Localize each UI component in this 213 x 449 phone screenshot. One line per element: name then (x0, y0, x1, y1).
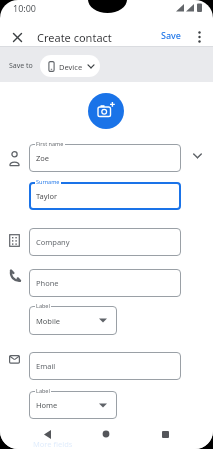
staticText: Mobile (36, 316, 61, 326)
staticText: Save (161, 29, 182, 41)
button[interactable] (38, 425, 56, 443)
staticText: Phone (36, 278, 59, 288)
staticText: 10:00 (13, 2, 37, 14)
staticText: Label (36, 387, 50, 394)
button[interactable] (88, 93, 124, 129)
staticText: Company (36, 237, 70, 247)
button[interactable] (188, 147, 206, 165)
staticText: Save to (9, 61, 33, 71)
button[interactable]: Email (29, 352, 181, 380)
staticText: Taylor (36, 191, 58, 201)
button[interactable] (8, 28, 26, 46)
button[interactable]: Mobile (29, 306, 117, 335)
button[interactable] (156, 425, 174, 443)
staticText: Create contact (37, 30, 112, 45)
button[interactable]: Phone (29, 269, 181, 297)
staticText: Device (59, 62, 83, 72)
staticText: Home (36, 400, 58, 410)
button[interactable]: Taylor (29, 182, 181, 210)
button[interactable] (192, 28, 206, 46)
button[interactable]: Zoe (29, 144, 181, 172)
staticText: More fields (33, 439, 73, 449)
staticText: Label (36, 302, 50, 309)
staticText: Email (36, 361, 56, 371)
button[interactable]: Company (29, 228, 181, 256)
button[interactable]: Home (29, 391, 117, 419)
staticText: Zoe (36, 153, 50, 163)
staticText: Surname (36, 178, 60, 185)
button[interactable] (97, 425, 115, 443)
button[interactable]: Device (40, 55, 100, 77)
staticText: First name (36, 140, 64, 147)
button[interactable]: Save (157, 27, 185, 43)
